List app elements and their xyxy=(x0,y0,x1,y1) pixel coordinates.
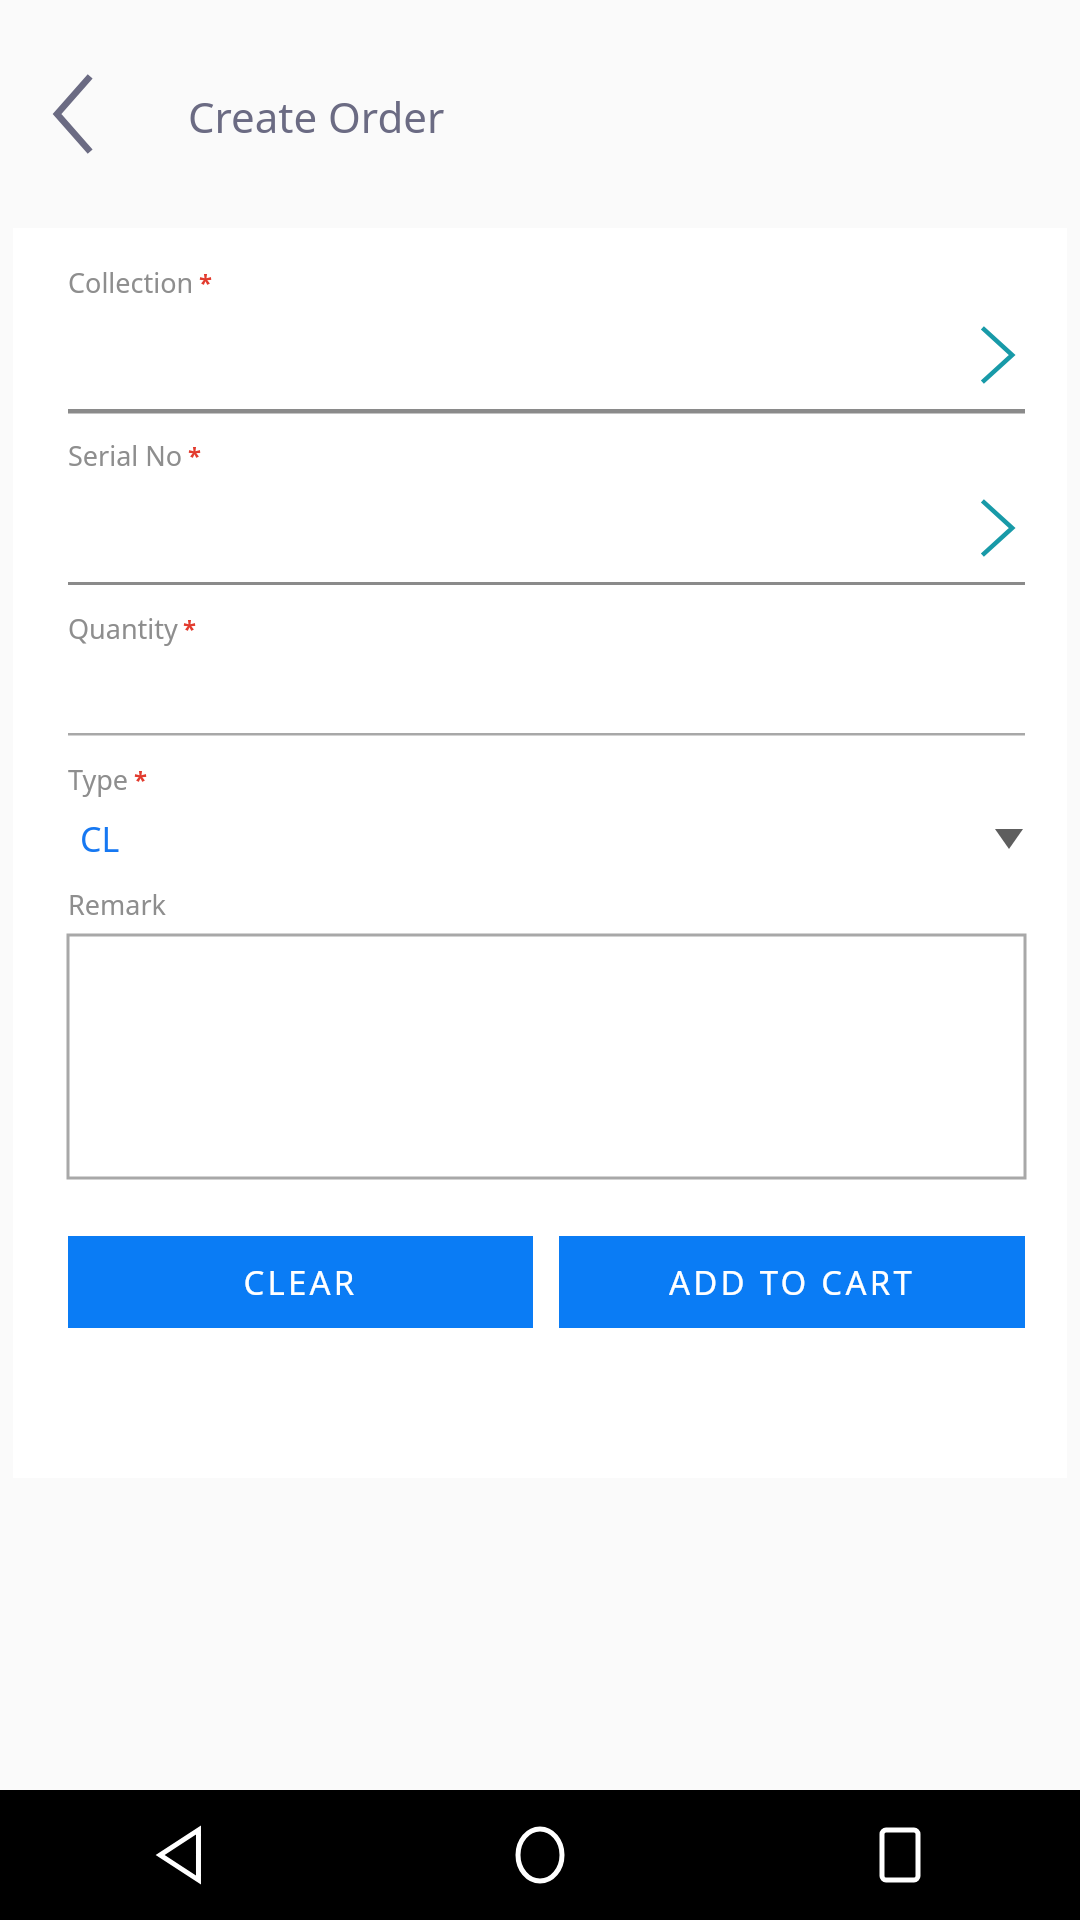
button[interactable]: Select Collection xyxy=(68,301,1025,409)
other: Open type dropdown xyxy=(995,829,1023,849)
staticText: * xyxy=(134,763,148,796)
button[interactable] xyxy=(68,935,1025,1178)
other: Select Collection xyxy=(977,323,1021,387)
button[interactable]: Home xyxy=(360,1790,720,1920)
button[interactable]: Back xyxy=(0,1790,360,1920)
button[interactable]: CLEAR xyxy=(68,1236,533,1328)
staticText: Remark xyxy=(68,886,166,923)
button[interactable]: Back xyxy=(34,74,114,154)
staticText: Create Order xyxy=(188,88,445,145)
button[interactable]: ADD TO CART xyxy=(559,1236,1025,1328)
other: Select Serial No xyxy=(977,496,1021,560)
staticText: Quantity xyxy=(68,610,178,647)
staticText: Serial No xyxy=(68,437,183,474)
staticText: Collection xyxy=(68,264,194,301)
button[interactable]: CL xyxy=(68,806,1025,872)
staticText: * xyxy=(183,612,197,645)
button[interactable]: Recent apps xyxy=(720,1790,1080,1920)
staticText: * xyxy=(199,266,213,299)
staticText: CL xyxy=(80,816,120,862)
staticText: Type xyxy=(68,761,129,798)
button[interactable]: Select Serial No xyxy=(68,474,1025,582)
staticText: * xyxy=(188,439,202,472)
staticText: CLEAR xyxy=(243,1260,358,1305)
staticText: ADD TO CART xyxy=(669,1260,915,1305)
